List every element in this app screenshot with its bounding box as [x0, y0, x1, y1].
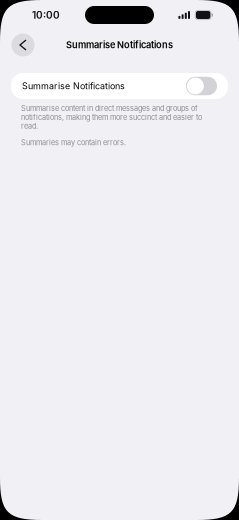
button[interactable]: Summarise Notifications	[11, 73, 228, 99]
staticText: Summarise Notifications	[22, 81, 125, 91]
staticText: Summaries may contain errors.	[21, 138, 126, 147]
staticText: read.	[21, 122, 38, 131]
button[interactable]: Back	[11, 33, 34, 56]
staticText: Summarise Notifications	[66, 39, 173, 50]
staticText: 10:00	[32, 9, 60, 21]
staticText: notifications, making them more succinct…	[21, 113, 202, 122]
staticText: Summarise content in direct messages and…	[21, 104, 198, 113]
